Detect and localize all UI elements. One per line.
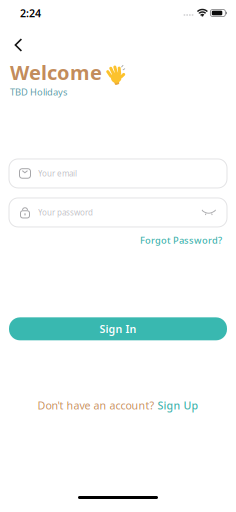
staticText: Sign In <box>99 322 136 336</box>
staticText: 2:24 <box>20 6 41 20</box>
staticText: Your email <box>38 168 77 179</box>
staticText: Your password <box>38 207 93 218</box>
staticText: Welcome <box>10 59 102 86</box>
staticText: Don't have an account? <box>37 398 154 412</box>
staticText: Sign Up <box>157 398 198 412</box>
button[interactable]: Forgot Password? <box>140 234 222 246</box>
button[interactable]: Sign Up <box>157 398 198 412</box>
button[interactable]: Sign In <box>9 317 227 340</box>
button[interactable]: Show password <box>202 209 216 215</box>
staticText: Forgot Password? <box>140 234 222 246</box>
staticText: TBD Holidays <box>10 86 67 98</box>
button[interactable]: Password <box>0 198 236 227</box>
button[interactable]: Email <box>0 159 236 188</box>
button[interactable]: Back <box>14 38 23 52</box>
